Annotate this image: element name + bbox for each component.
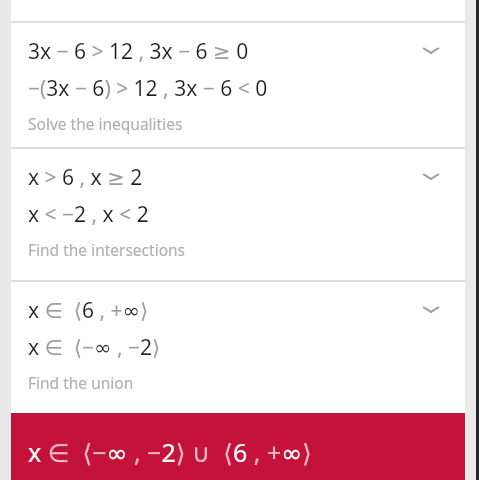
button[interactable]: Expand find the union xyxy=(409,287,453,331)
staticText: x < −2 , x < 2 xyxy=(28,200,149,229)
staticText: Solve the inequalities xyxy=(28,113,183,134)
button[interactable]: x ∈ ⟨6 , +∞⟩ xyxy=(11,282,465,413)
staticText: Find the union xyxy=(28,372,134,393)
staticText: 3x − 6 > 12 , 3x − 6 ≥ 0 xyxy=(28,37,249,66)
staticText: Find the intersections xyxy=(28,239,186,260)
button[interactable]: x > 6 , x ≥ 2 xyxy=(11,149,465,280)
button[interactable]: 3x − 6 > 12 , 3x − 6 ≥ 0 xyxy=(11,23,465,147)
staticText: x ∈ ⟨−∞ , −2⟩ ∪ ⟨6 , +∞⟩ xyxy=(28,435,312,469)
button[interactable]: Expand find the intersections xyxy=(409,154,453,198)
staticText: −(3x − 6) > 12 , 3x − 6 < 0 xyxy=(28,74,268,103)
button[interactable]: Expand solve the inequalities xyxy=(409,28,453,72)
staticText: x > 6 , x ≥ 2 xyxy=(28,163,143,192)
staticText: x ∈ ⟨−∞ , −2⟩ xyxy=(28,333,161,362)
button[interactable]: x ∈ ⟨−∞ , −2⟩ ∪ ⟨6 , +∞⟩ xyxy=(11,413,465,480)
staticText: x ∈ ⟨6 , +∞⟩ xyxy=(28,296,149,325)
